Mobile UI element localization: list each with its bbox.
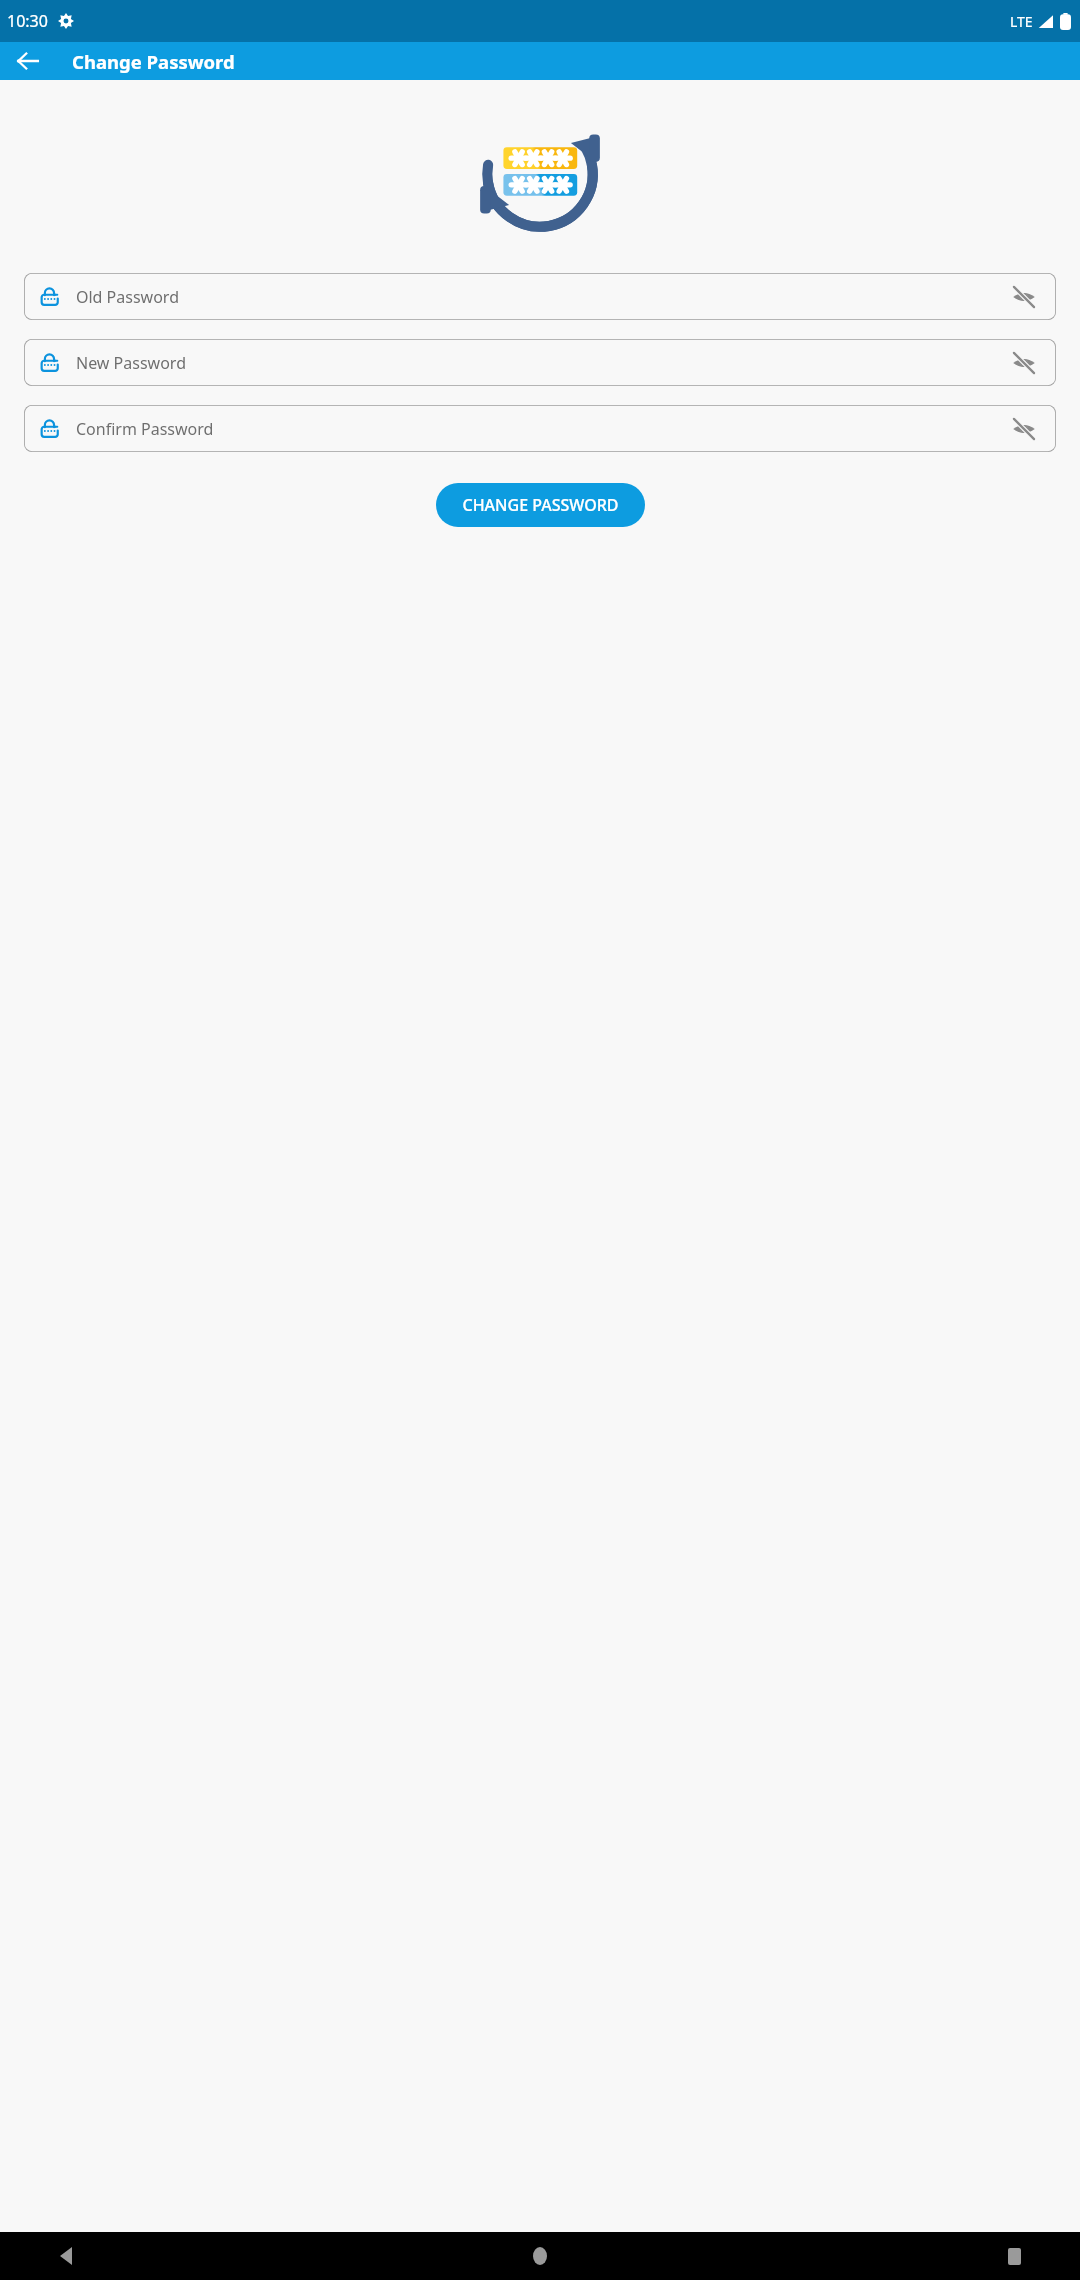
button[interactable]: Show password [1007,346,1041,380]
staticText: Confirm Password [76,418,214,440]
button[interactable]: Home [518,2234,562,2278]
staticText: New Password [76,352,186,374]
button[interactable]: Confirm Password [24,405,1056,452]
button[interactable]: Back [10,43,46,79]
staticText: Change Password [72,49,235,74]
button[interactable]: Recent apps [992,2234,1036,2278]
button[interactable]: CHANGE PASSWORD [436,483,645,527]
staticText: LTE [1010,12,1033,31]
button[interactable]: New Password [24,339,1056,386]
staticText: CHANGE PASSWORD [462,494,619,516]
button[interactable]: Show password [1007,280,1041,314]
staticText: 10:30 [7,10,48,32]
button[interactable]: Old Password [24,273,1056,320]
button[interactable]: Back [44,2234,88,2278]
button[interactable]: Show password [1007,412,1041,446]
staticText: Old Password [76,286,179,308]
